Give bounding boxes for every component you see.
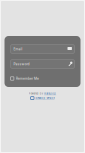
button[interactable]: Remember Me [10, 76, 74, 80]
button[interactable]: RainLoop [44, 92, 56, 95]
staticText: Email [13, 47, 22, 51]
staticText: Remember Me [16, 77, 39, 80]
staticText: Powered by [29, 92, 43, 95]
staticText: Password [13, 62, 29, 66]
button[interactable]: Password [10, 59, 74, 68]
staticText: Desktop version [35, 97, 54, 100]
button[interactable]: Email [10, 44, 74, 53]
button[interactable]: Desktop version [31, 97, 54, 100]
staticText: RainLoop [44, 92, 56, 95]
